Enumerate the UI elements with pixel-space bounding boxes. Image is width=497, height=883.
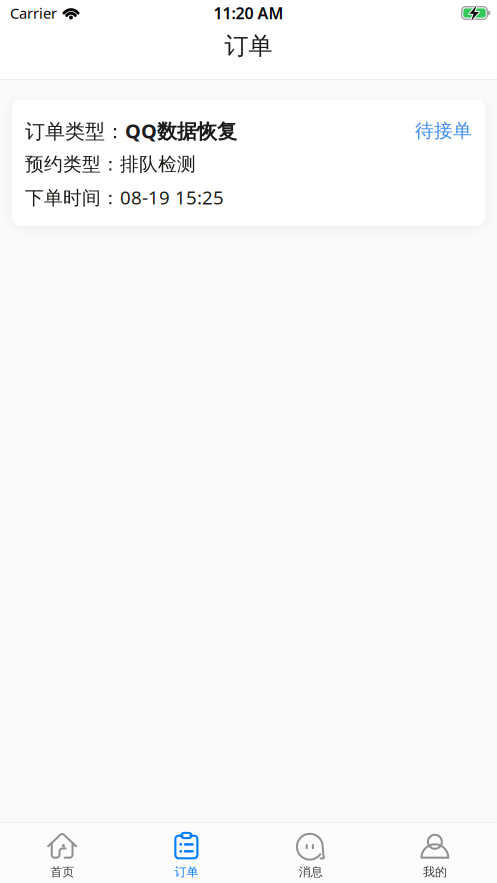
button[interactable]: 我的 (373, 823, 497, 883)
staticText: 我的 (423, 865, 447, 879)
staticText: Carrier (10, 3, 57, 23)
button[interactable]: 消息 (248, 823, 373, 883)
staticText: 首页 (50, 865, 74, 879)
staticText: 11:20 AM (213, 2, 283, 24)
staticText: 消息 (299, 865, 323, 879)
staticText: 订单 (224, 31, 272, 61)
staticText: 订单 (174, 865, 198, 879)
button[interactable]: 首页 (0, 823, 124, 883)
staticText: 待接单 (415, 119, 472, 142)
staticText: 下单时间：08-19 15:25 (25, 185, 224, 210)
staticText: 预约类型：排队检测 (25, 153, 196, 176)
button[interactable]: 订单 (124, 823, 248, 883)
staticText: 订单类型：QQ数据恢复 (25, 117, 237, 144)
